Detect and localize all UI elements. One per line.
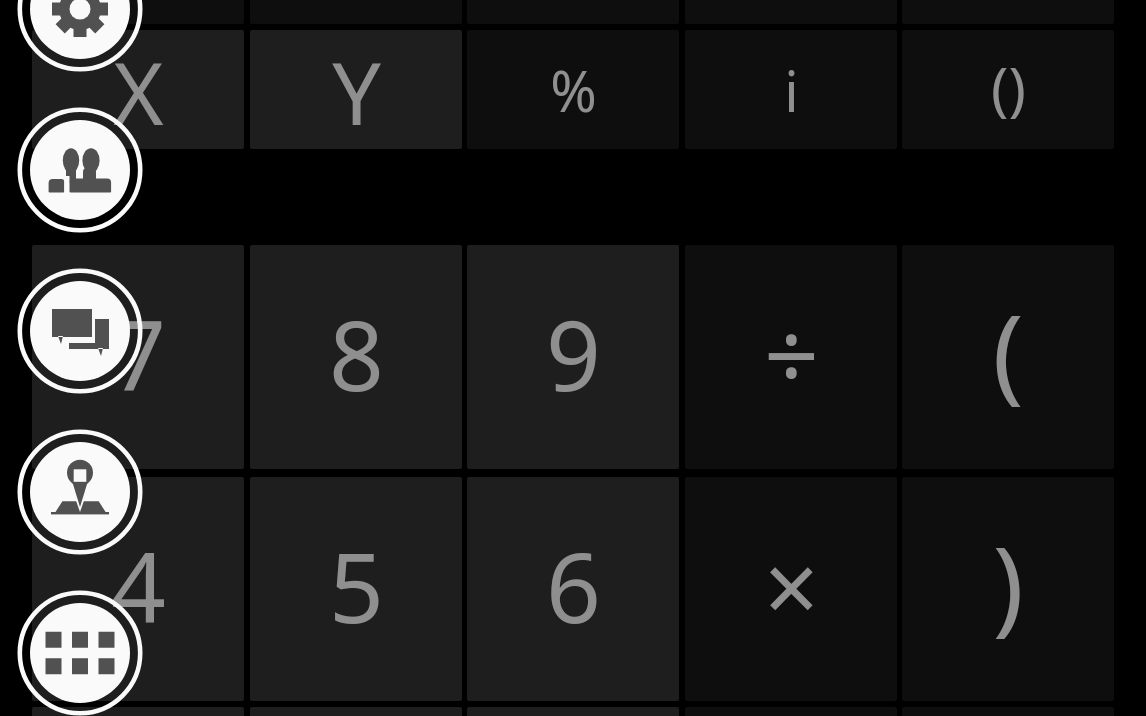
button[interactable] (32, 0, 244, 24)
staticText: 9 (546, 288, 601, 419)
button[interactable]: 6 (467, 477, 679, 701)
button[interactable]: Y (250, 30, 462, 149)
button[interactable]: 9 (467, 245, 679, 469)
staticText: X (113, 33, 164, 149)
button[interactable]: Apps (14, 587, 146, 716)
button[interactable]: Settings (14, 0, 146, 75)
staticText: 4 (111, 520, 166, 651)
button[interactable]: × (685, 477, 897, 701)
button[interactable]: ÷ (685, 245, 897, 469)
button[interactable]: i (685, 30, 897, 149)
button[interactable]: 5 (250, 477, 462, 701)
staticText: 7 (111, 288, 166, 419)
button[interactable]: Maps (14, 426, 146, 558)
staticText: 8 (329, 288, 384, 419)
button[interactable]: 7 (32, 245, 244, 469)
button[interactable]: X (32, 30, 244, 149)
button[interactable]: ) (902, 477, 1114, 701)
staticText: ( (992, 280, 1024, 422)
staticText: × (764, 520, 819, 651)
button[interactable]: ( (902, 245, 1114, 469)
button[interactable]: % (467, 30, 679, 149)
staticText: () (991, 48, 1026, 127)
button[interactable]: Messages (14, 265, 146, 397)
staticText: 6 (546, 520, 601, 651)
button[interactable]: () (902, 30, 1114, 149)
staticText: i (784, 52, 799, 128)
button[interactable]: 8 (250, 245, 462, 469)
staticText: Y (332, 33, 381, 149)
staticText: ) (992, 512, 1024, 654)
button[interactable]: Contacts (14, 104, 146, 236)
staticText: ÷ (764, 288, 819, 419)
button[interactable]: 1 (32, 707, 244, 716)
staticText: % (550, 52, 597, 128)
button[interactable]: 4 (32, 477, 244, 701)
staticText: 5 (329, 520, 384, 651)
